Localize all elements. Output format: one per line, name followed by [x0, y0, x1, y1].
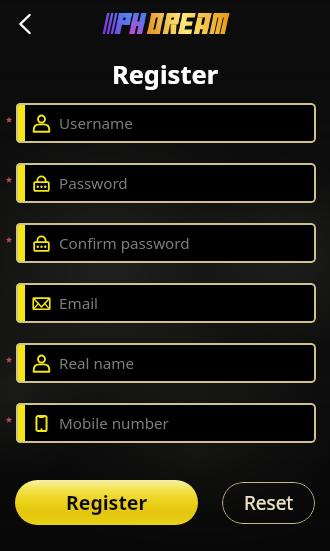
staticText: Username: [59, 113, 133, 134]
staticText: Email: [59, 293, 99, 314]
staticText: Mobile number: [59, 413, 169, 434]
button[interactable]: Username: [16, 103, 316, 143]
staticText: Reset: [244, 490, 294, 516]
staticText: Register: [66, 489, 148, 516]
staticText: Confirm password: [59, 233, 190, 254]
button[interactable]: Mobile number: [16, 403, 316, 443]
button[interactable]: Back: [7, 7, 41, 41]
button[interactable]: Real name: [16, 343, 316, 383]
button[interactable]: Register: [15, 480, 198, 525]
button[interactable]: Confirm password: [16, 223, 316, 263]
button[interactable]: Email: [16, 283, 316, 323]
staticText: Password: [59, 173, 128, 194]
staticText: Real name: [59, 353, 135, 374]
button[interactable]: Reset: [222, 482, 315, 524]
staticText: Register: [0, 57, 330, 92]
button[interactable]: Password: [16, 163, 316, 203]
